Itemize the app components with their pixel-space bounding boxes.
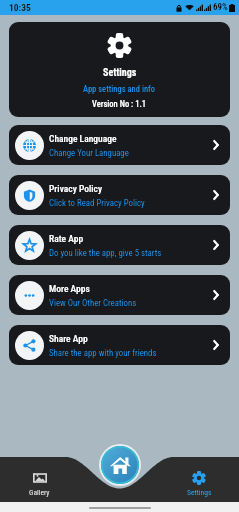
staticText: Change Language <box>49 133 117 144</box>
button[interactable]: Gallery <box>0 463 79 497</box>
button[interactable]: More Apps <box>9 275 230 315</box>
staticText: Do you like the app, give 5 starts <box>49 248 162 258</box>
staticText: More Apps <box>49 283 90 294</box>
button[interactable]: Home <box>98 443 142 487</box>
staticText: 69% <box>213 2 228 13</box>
staticText: App settings and info <box>83 84 156 94</box>
button[interactable]: Rate App <box>9 225 230 265</box>
staticText: Privacy Policy <box>49 183 103 194</box>
staticText: Rate App <box>49 233 84 244</box>
staticText: 10:35 <box>9 2 31 13</box>
button[interactable]: Change Language <box>9 125 230 165</box>
button[interactable]: Share App <box>9 325 230 365</box>
staticText: Settings <box>187 488 212 497</box>
button[interactable]: Settings <box>159 463 239 497</box>
button[interactable]: Privacy Policy <box>9 175 230 215</box>
staticText: Version No : 1.1 <box>92 99 147 109</box>
staticText: Change Your Language <box>49 148 129 158</box>
staticText: Share the app with your friends <box>49 348 157 358</box>
staticText: Settings <box>103 67 137 79</box>
staticText: Gallery <box>29 488 50 497</box>
staticText: Share App <box>49 333 88 344</box>
staticText: View Our Other Creations <box>49 298 137 308</box>
staticText: Click to Read Privacy Policy <box>49 198 145 208</box>
